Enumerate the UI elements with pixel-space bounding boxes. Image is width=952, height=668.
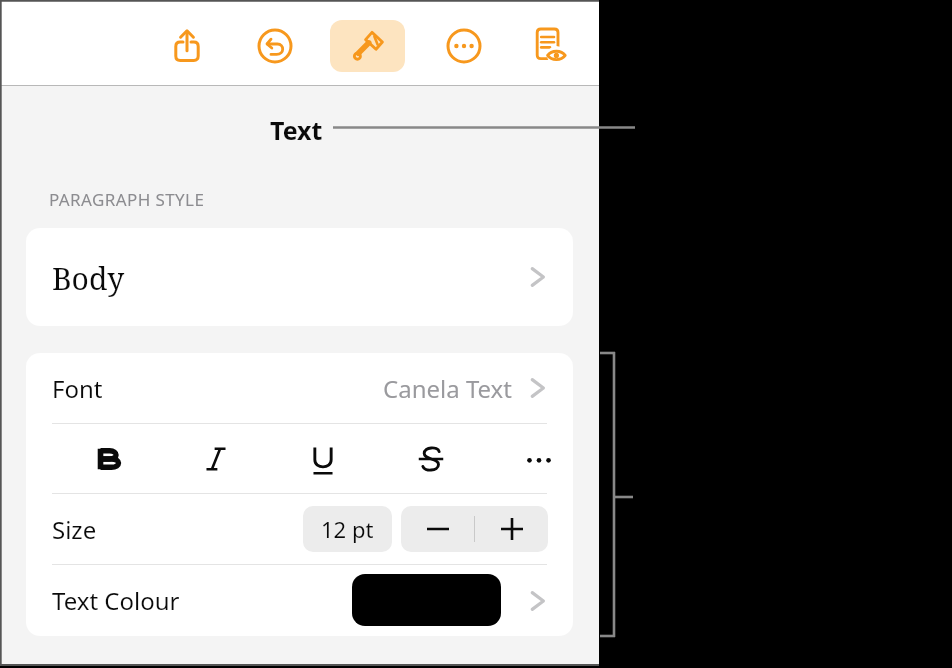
staticText: 12 pt [321,514,374,544]
button[interactable]: 12 pt [303,506,392,552]
button[interactable]: Body [26,228,573,326]
button[interactable]: Italic [190,424,242,493]
button[interactable]: Bold [82,424,134,493]
button[interactable]: Strikethrough [405,424,457,493]
button[interactable]: Undo [243,18,307,74]
button[interactable]: Increase size [475,506,548,552]
staticText: Text [270,113,323,147]
button[interactable]: Text Colour [26,565,573,636]
staticText: PARAGRAPH STYLE [49,188,205,211]
button[interactable]: Document options [518,17,582,73]
button[interactable]: More text styles [513,424,565,493]
button[interactable]: Format [336,18,400,74]
button[interactable]: More options [432,18,496,74]
button[interactable]: Decrease size [401,506,474,552]
staticText: Size [52,513,97,546]
button[interactable]: Font [26,353,573,423]
staticText: Text Colour [52,584,180,617]
staticText: Body [52,258,125,299]
button[interactable]: Share [155,18,219,74]
staticText: Canela Text [383,372,512,405]
staticText: Font [52,372,103,405]
button[interactable]: Underline [297,424,349,493]
